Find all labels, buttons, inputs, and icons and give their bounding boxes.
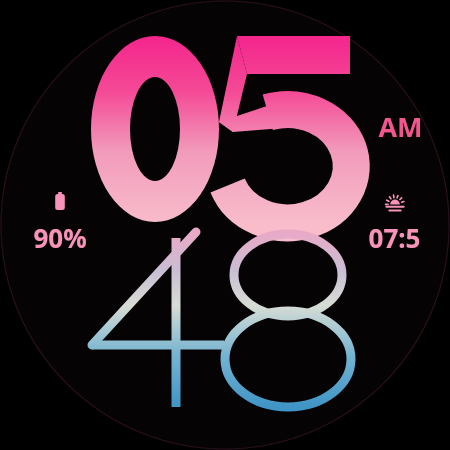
button[interactable] [378,108,423,145]
button[interactable]: Sunrise 07:53 [361,192,429,255]
button[interactable]: Hour 05 [0,0,450,450]
button[interactable]: Battery 90 percent [28,192,92,255]
button[interactable]: Minutes 48 [0,0,450,450]
